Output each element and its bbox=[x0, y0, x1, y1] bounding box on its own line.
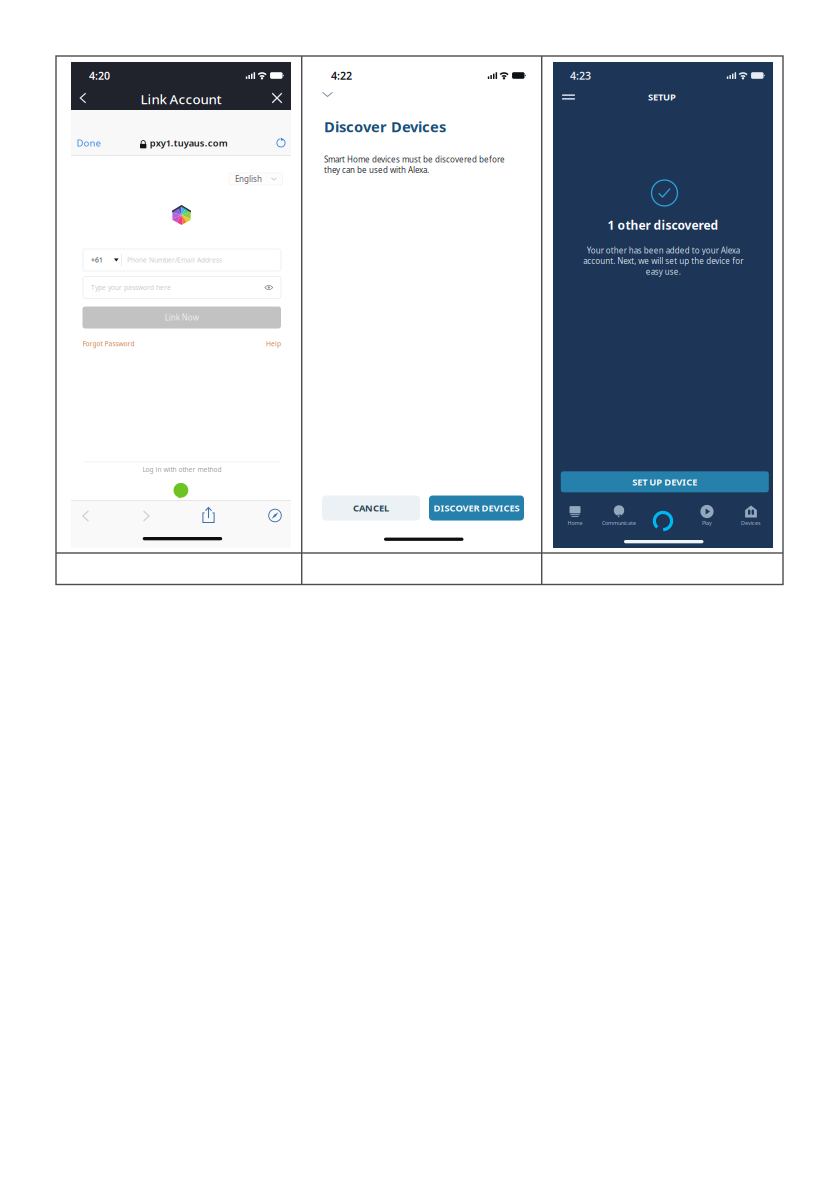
staticText: Forgot Password bbox=[82, 339, 134, 348]
button[interactable]: Back bbox=[75, 506, 97, 526]
button[interactable]: Alexa bbox=[641, 505, 685, 537]
button[interactable]: Devices bbox=[729, 505, 773, 537]
staticText: Your other has been added to your Alexa … bbox=[583, 245, 743, 277]
button[interactable]: CANCEL bbox=[322, 495, 420, 520]
button[interactable]: Communicate bbox=[597, 505, 641, 537]
button[interactable]: Menu bbox=[562, 93, 574, 101]
staticText: 4:23 bbox=[570, 68, 591, 83]
staticText: Log in with other method bbox=[142, 465, 221, 474]
button[interactable]: Forgot Password bbox=[82, 339, 134, 348]
staticText: Done bbox=[76, 137, 100, 149]
staticText: Type your password here bbox=[91, 283, 171, 292]
staticText: CANCEL bbox=[353, 502, 389, 514]
button[interactable]: Forward bbox=[135, 506, 157, 526]
staticText: Communicate bbox=[602, 519, 636, 527]
staticText: Link Now bbox=[165, 312, 199, 323]
button[interactable]: Open in Safari bbox=[265, 505, 285, 525]
staticText: Discover Devices bbox=[324, 117, 446, 136]
staticText: SET UP DEVICE bbox=[632, 476, 697, 488]
button[interactable]: Play bbox=[685, 505, 729, 537]
staticText: Play bbox=[702, 519, 712, 527]
staticText: DISCOVER DEVICES bbox=[433, 502, 519, 514]
staticText: +61 bbox=[91, 256, 103, 264]
staticText: Devices bbox=[741, 519, 761, 527]
staticText: Home bbox=[567, 519, 582, 527]
staticText: 4:22 bbox=[331, 68, 352, 83]
button[interactable]: Home bbox=[553, 505, 597, 537]
button[interactable]: Link Now bbox=[82, 306, 281, 328]
button[interactable]: Back bbox=[73, 88, 93, 108]
staticText: SETUP bbox=[648, 91, 676, 103]
staticText: Link Account bbox=[140, 90, 221, 108]
staticText: Help bbox=[266, 339, 281, 348]
staticText: 4:20 bbox=[89, 68, 110, 83]
staticText: Smart Home devices must be discovered be… bbox=[324, 154, 505, 175]
button[interactable]: DISCOVER DEVICES bbox=[429, 495, 524, 520]
button[interactable]: Help bbox=[266, 339, 281, 348]
staticText: English bbox=[235, 174, 262, 184]
button[interactable]: Dismiss bbox=[322, 92, 332, 97]
staticText: 1 other discovered bbox=[607, 217, 718, 233]
button[interactable]: Done bbox=[76, 136, 106, 150]
button[interactable]: SET UP DEVICE bbox=[561, 471, 769, 492]
staticText: Phone Number/Email Address bbox=[127, 256, 222, 264]
button[interactable]: Share bbox=[197, 504, 219, 526]
button[interactable]: Sign in with WeChat bbox=[173, 483, 189, 499]
button[interactable]: Reload bbox=[276, 138, 286, 148]
staticText: pxy1.tuyaus.com bbox=[150, 137, 228, 149]
button[interactable]: English bbox=[229, 173, 282, 185]
button[interactable]: Close bbox=[267, 88, 287, 108]
